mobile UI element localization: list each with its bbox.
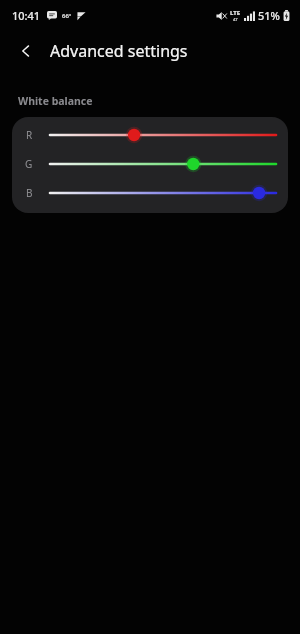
staticText: LTE	[230, 9, 241, 17]
button[interactable]: G	[12, 155, 288, 173]
staticText: 51%	[258, 8, 280, 23]
staticText: White balance	[18, 94, 93, 108]
staticText: R	[26, 128, 33, 142]
staticText: G	[25, 157, 33, 171]
button[interactable]: Back	[8, 33, 44, 69]
staticText: 66°	[62, 12, 72, 20]
button[interactable]: R	[12, 126, 288, 144]
staticText: Advanced settings	[50, 40, 188, 62]
staticText: 47	[233, 17, 238, 22]
button[interactable]: B	[12, 184, 288, 202]
staticText: B	[26, 186, 33, 200]
staticText: 10:41	[12, 8, 41, 23]
